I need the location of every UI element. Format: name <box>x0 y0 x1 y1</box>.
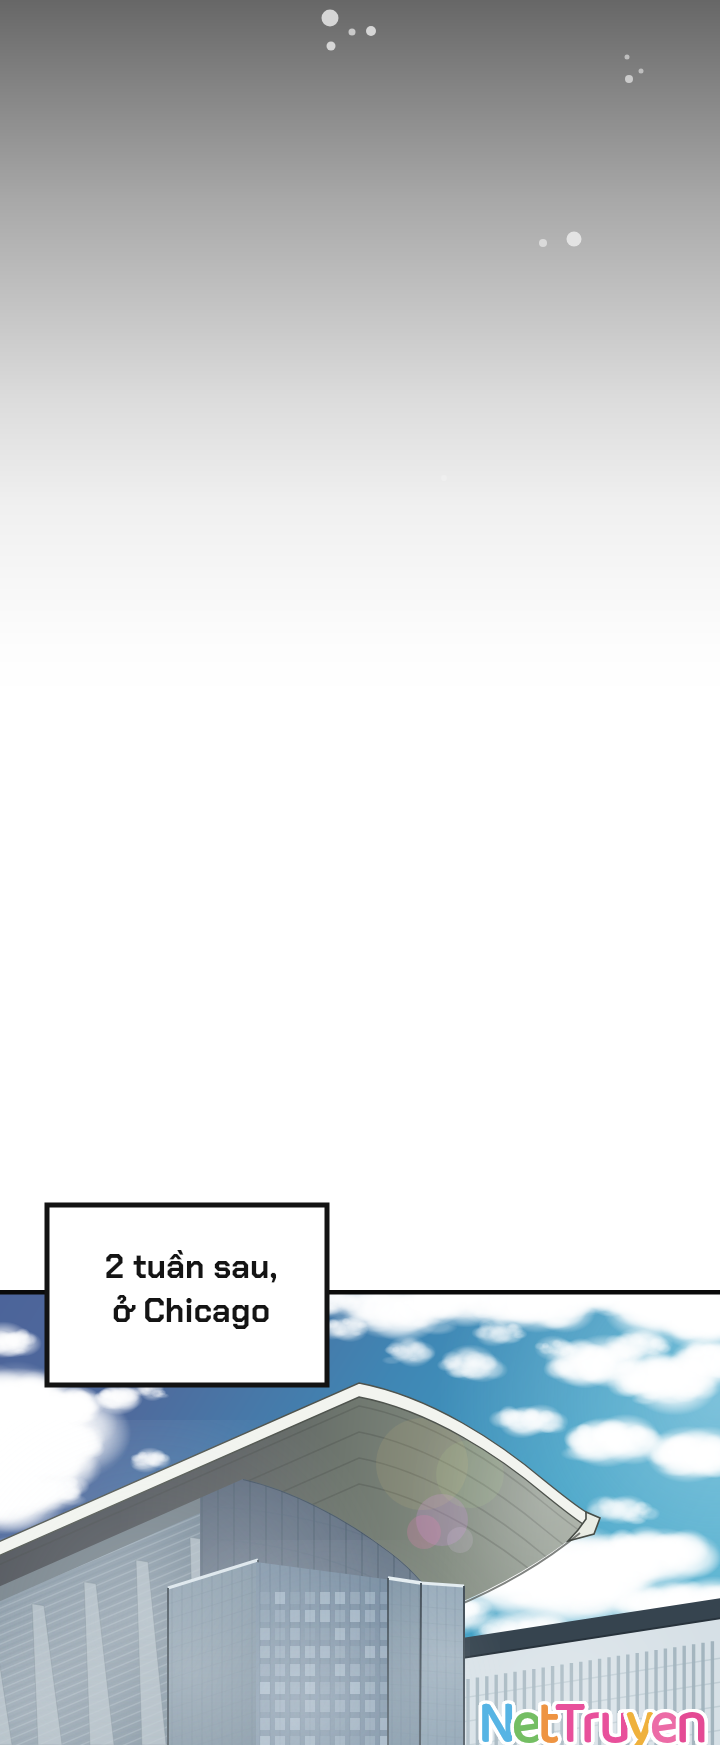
button[interactable] <box>0 0 720 1745</box>
